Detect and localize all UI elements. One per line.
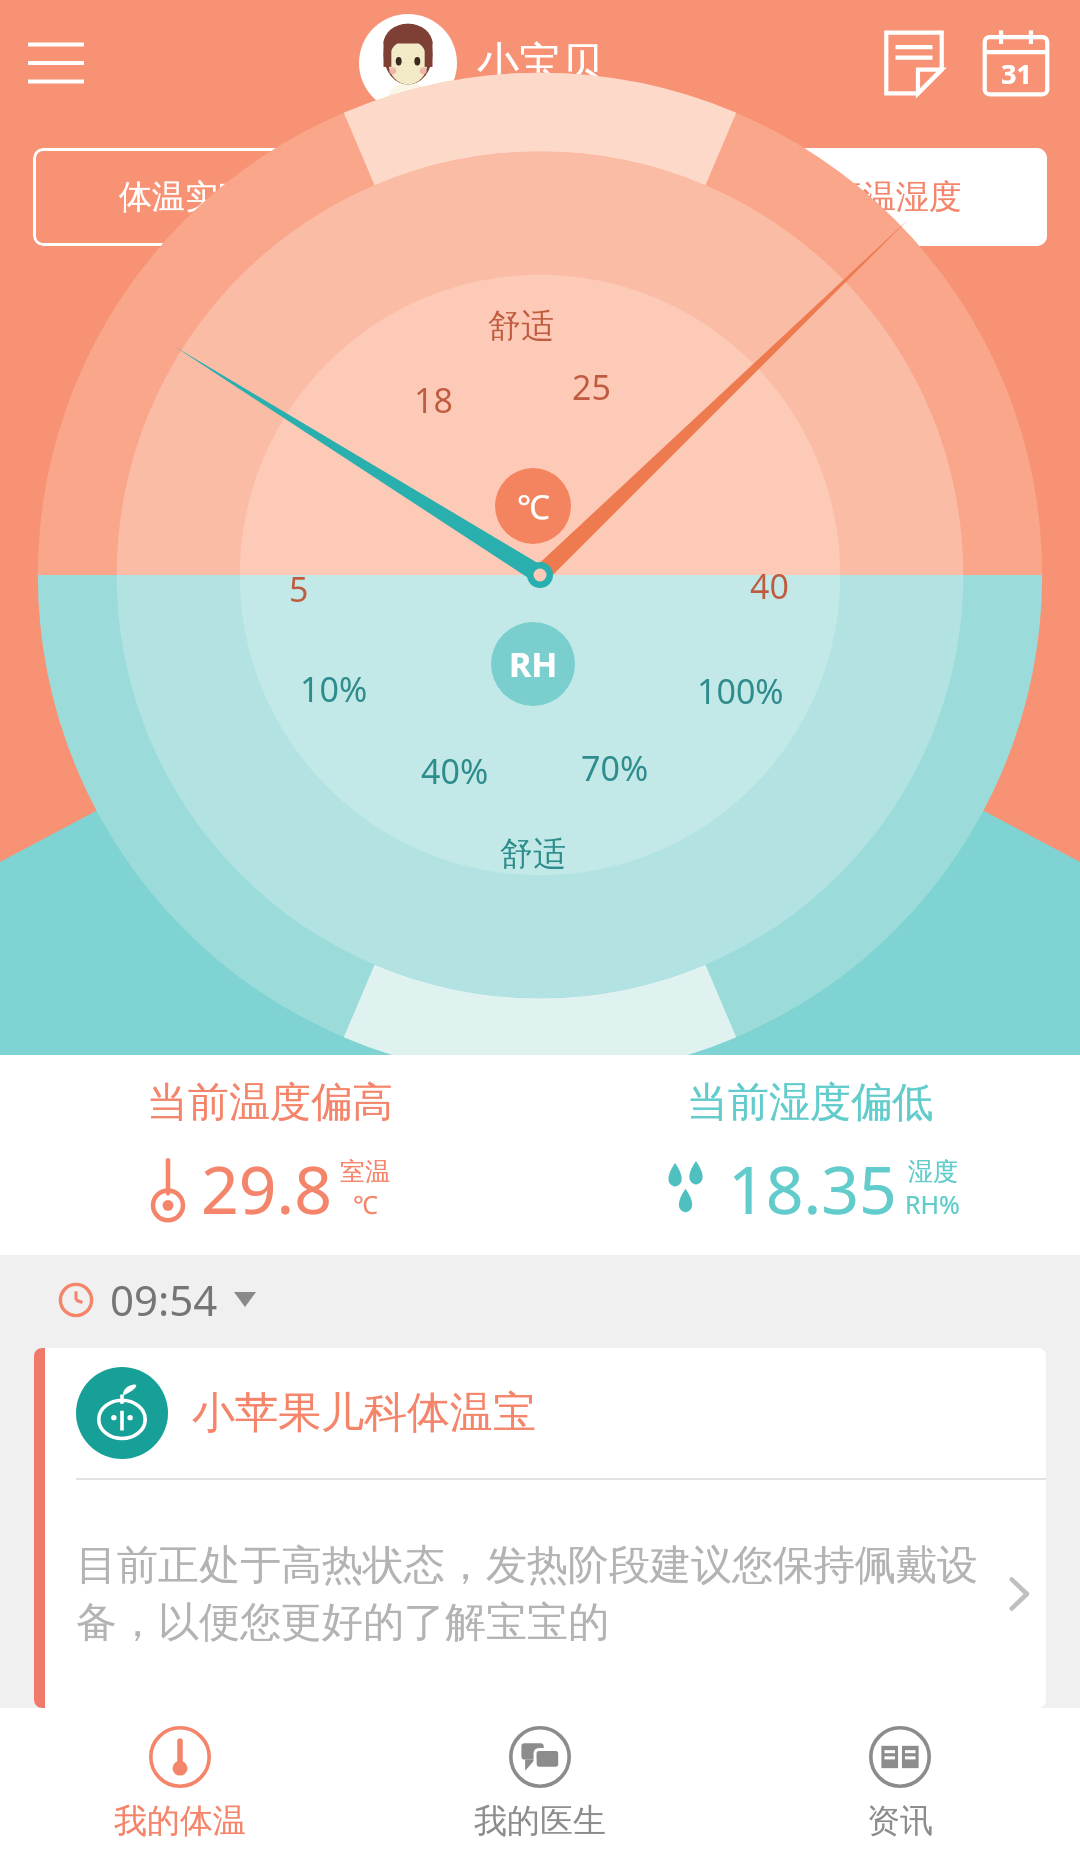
staticText: RH: [509, 641, 558, 687]
staticText: 5: [289, 566, 309, 612]
staticText: 小宝贝: [477, 37, 603, 90]
button[interactable]: 衣内微气候: [372, 148, 708, 246]
staticText: 目前正处于高热状态，发热阶段建议您保持佩戴设备，以便您更好的了解宝宝的: [76, 1540, 996, 1648]
button[interactable]: Menu: [18, 25, 94, 101]
button[interactable]: Notes: [868, 17, 960, 109]
staticText: 体温实时测: [119, 176, 284, 218]
staticText: 我的体温: [114, 1800, 246, 1842]
button[interactable]: 09:54: [58, 1271, 256, 1328]
button[interactable]: 环境温湿度: [711, 148, 1047, 246]
staticText: 小苹果儿科体温宝: [192, 1386, 536, 1440]
staticText: 我的医生: [474, 1800, 606, 1842]
button[interactable]: 体温实时测: [33, 148, 369, 246]
staticText: 资讯: [867, 1800, 933, 1842]
staticText: 舒适: [488, 305, 554, 347]
staticText: ℃: [353, 1187, 378, 1221]
staticText: RH%: [905, 1187, 960, 1221]
staticText: 当前湿度偏低: [687, 1077, 933, 1129]
staticText: 70%: [581, 745, 649, 791]
button[interactable]: 我的体温: [0, 1708, 360, 1860]
staticText: 25: [572, 364, 611, 410]
staticText: 40%: [421, 748, 489, 794]
button[interactable]: Calendar: [970, 17, 1062, 109]
staticText: 18: [414, 377, 453, 423]
staticText: 舒适: [500, 833, 566, 875]
staticText: 当前温度偏高: [147, 1077, 393, 1129]
staticText: 29.8: [201, 1143, 332, 1233]
staticText: 室温: [340, 1156, 390, 1187]
button[interactable]: 资讯: [720, 1708, 1080, 1860]
staticText: 100%: [697, 668, 784, 714]
staticText: 10%: [300, 666, 368, 712]
staticText: 09:54: [110, 1271, 218, 1328]
staticText: 31: [1001, 55, 1032, 92]
button[interactable]: 我的医生: [360, 1708, 720, 1860]
staticText: 40: [750, 563, 789, 609]
staticText: 18.35: [728, 1143, 897, 1233]
staticText: ℃: [517, 484, 550, 529]
staticText: 环境温湿度: [797, 176, 962, 218]
button[interactable]: 小苹果儿科体温宝: [34, 1348, 1046, 1708]
staticText: 湿度: [908, 1156, 958, 1187]
